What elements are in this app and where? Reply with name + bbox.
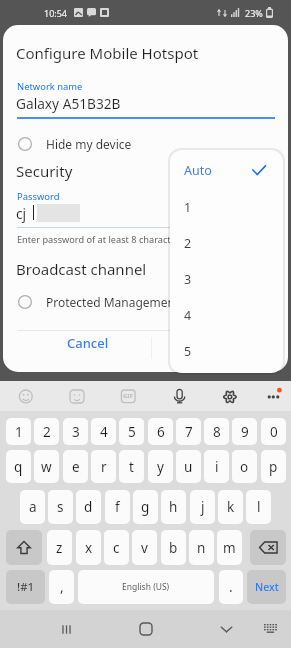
staticText: f [115,498,120,516]
staticText: 1 [15,423,23,441]
button[interactable]: Backspace [250,530,286,565]
button[interactable]: Cancel [55,325,120,361]
staticText: 5 [128,423,136,441]
button[interactable]: o [232,450,257,483]
button[interactable]: p [261,450,286,483]
button[interactable]: English (US) [78,570,214,604]
button[interactable]: 1 [6,418,31,445]
staticText: p [269,458,278,476]
button[interactable]: Hide my device [3,132,288,156]
button[interactable]: k [218,490,243,524]
button[interactable]: Protected Management Frames [3,290,288,314]
button[interactable]: b [161,530,186,565]
staticText: 3 [184,271,192,288]
staticText: Security [16,161,73,181]
button[interactable]: s [48,490,73,524]
button[interactable]: 4 [170,296,283,332]
button[interactable]: g [133,490,158,524]
button[interactable]: u [176,450,201,483]
button[interactable]: a [20,490,45,524]
button[interactable]: 6 [148,418,173,445]
button[interactable]: 1 [170,188,283,224]
staticText: h [169,498,178,516]
staticText: u [184,458,193,476]
staticText: j [201,498,205,516]
staticText: o [240,458,249,476]
button[interactable]: c [104,530,129,565]
staticText: !#1 [17,579,35,595]
button[interactable]: t [119,450,144,483]
staticText: cj [16,204,27,223]
button[interactable]: 3 [170,260,283,296]
button[interactable]: GIF [116,386,138,408]
staticText: Auto [184,162,212,179]
button[interactable]: 5 [119,418,144,445]
button[interactable]: i [204,450,229,483]
button[interactable]: z [47,530,72,565]
button[interactable]: . [219,570,243,604]
button[interactable]: v [132,530,157,565]
button[interactable]: Auto [170,150,283,188]
button[interactable]: 2 [34,418,59,445]
button[interactable]: Hide keyboard [215,610,237,648]
staticText: Cancel [67,334,109,352]
staticText: s [57,498,64,516]
staticText: 4 [184,307,192,324]
staticText: n [197,539,206,557]
button[interactable]: 2 [170,224,283,260]
button[interactable]: 3 [63,418,88,445]
staticText: 7 [185,423,193,441]
staticText: Enter password of at least 8 characters [17,233,185,246]
staticText: l [257,498,261,516]
staticText: 3 [72,423,80,441]
button[interactable]: w [34,450,59,483]
button[interactable]: x [76,530,101,565]
staticText: z [56,539,63,557]
staticText: Hide my device [46,136,132,152]
button[interactable]: , [49,570,74,604]
button[interactable]: 9 [232,418,257,445]
button[interactable]: Home [135,610,157,648]
staticText: 0 [270,423,278,441]
button[interactable]: q [6,450,31,483]
staticText: Next [255,580,279,594]
staticText: x [85,539,93,557]
button[interactable]: Settings [220,386,242,408]
staticText: Configure Mobile Hotspot [16,43,199,63]
staticText: r [101,458,107,476]
button[interactable]: 0 [261,418,286,445]
button[interactable]: 5 [170,332,283,368]
staticText: . [229,578,233,596]
staticText: 8 [213,423,221,441]
staticText: c [113,539,120,557]
button[interactable]: e [63,450,88,483]
button[interactable]: 8 [204,418,229,445]
staticText: 10:54 [44,7,68,19]
staticText: GIF [123,392,133,400]
button[interactable]: !#1 [6,570,45,604]
button[interactable]: r [91,450,116,483]
button[interactable]: Shift [6,530,42,565]
button[interactable]: Emoji [15,386,37,408]
button[interactable]: j [190,490,215,524]
staticText: Galaxy A51B32B [16,94,121,113]
button[interactable]: 7 [176,418,201,445]
staticText: b [169,539,178,557]
button[interactable]: Switch keyboard [260,610,282,648]
button[interactable]: m [217,530,242,565]
button[interactable]: Next [247,570,286,604]
button[interactable]: Recents [55,610,77,648]
button[interactable]: f [105,490,130,524]
staticText: 9 [241,423,249,441]
staticText: t [129,458,134,476]
button[interactable]: d [76,490,101,524]
button[interactable]: More options [264,386,286,408]
button[interactable]: Stickers [65,386,87,408]
button[interactable]: y [148,450,173,483]
staticText: 23% [245,7,263,19]
button[interactable]: 4 [91,418,116,445]
button[interactable]: n [189,530,214,565]
button[interactable]: Voice input [170,386,192,408]
button[interactable]: h [161,490,186,524]
button[interactable]: l [246,490,271,524]
